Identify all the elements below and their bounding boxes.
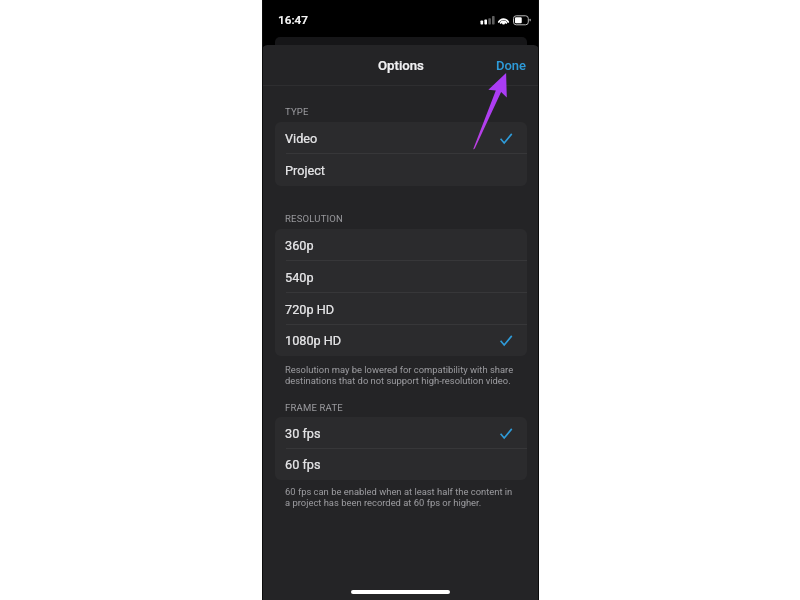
staticText: TYPE: [285, 106, 309, 117]
button[interactable]: Video: [275, 122, 527, 154]
staticText: 30 fps: [285, 426, 321, 441]
staticText: 360p: [285, 238, 314, 253]
staticText: FRAME RATE: [285, 402, 343, 413]
staticText: 1080p HD: [285, 333, 342, 348]
button[interactable]: Done: [482, 49, 539, 82]
button[interactable]: 60 fps: [275, 449, 527, 480]
button[interactable]: 540p: [275, 261, 527, 293]
staticText: Done: [496, 58, 527, 73]
button[interactable]: Project: [275, 154, 527, 186]
staticText: Project: [285, 163, 325, 178]
staticText: Resolution may be lowered for compatibil…: [285, 364, 514, 375]
staticText: 60 fps: [285, 457, 321, 472]
staticText: Options: [378, 58, 424, 73]
staticText: 540p: [285, 270, 314, 285]
button[interactable]: 30 fps: [275, 417, 527, 449]
staticText: 60 fps can be enabled when at least half…: [285, 486, 513, 497]
staticText: destinations that do not support high-re…: [285, 375, 511, 386]
staticText: RESOLUTION: [285, 213, 344, 224]
staticText: a project has been recorded at 60 fps or…: [285, 497, 482, 508]
staticText: 16:47: [278, 13, 308, 27]
button[interactable]: 1080p HD: [275, 325, 527, 356]
staticText: Video: [285, 131, 318, 146]
button[interactable]: 720p HD: [275, 293, 527, 325]
staticText: 720p HD: [285, 302, 335, 317]
button[interactable]: 360p: [275, 229, 527, 261]
